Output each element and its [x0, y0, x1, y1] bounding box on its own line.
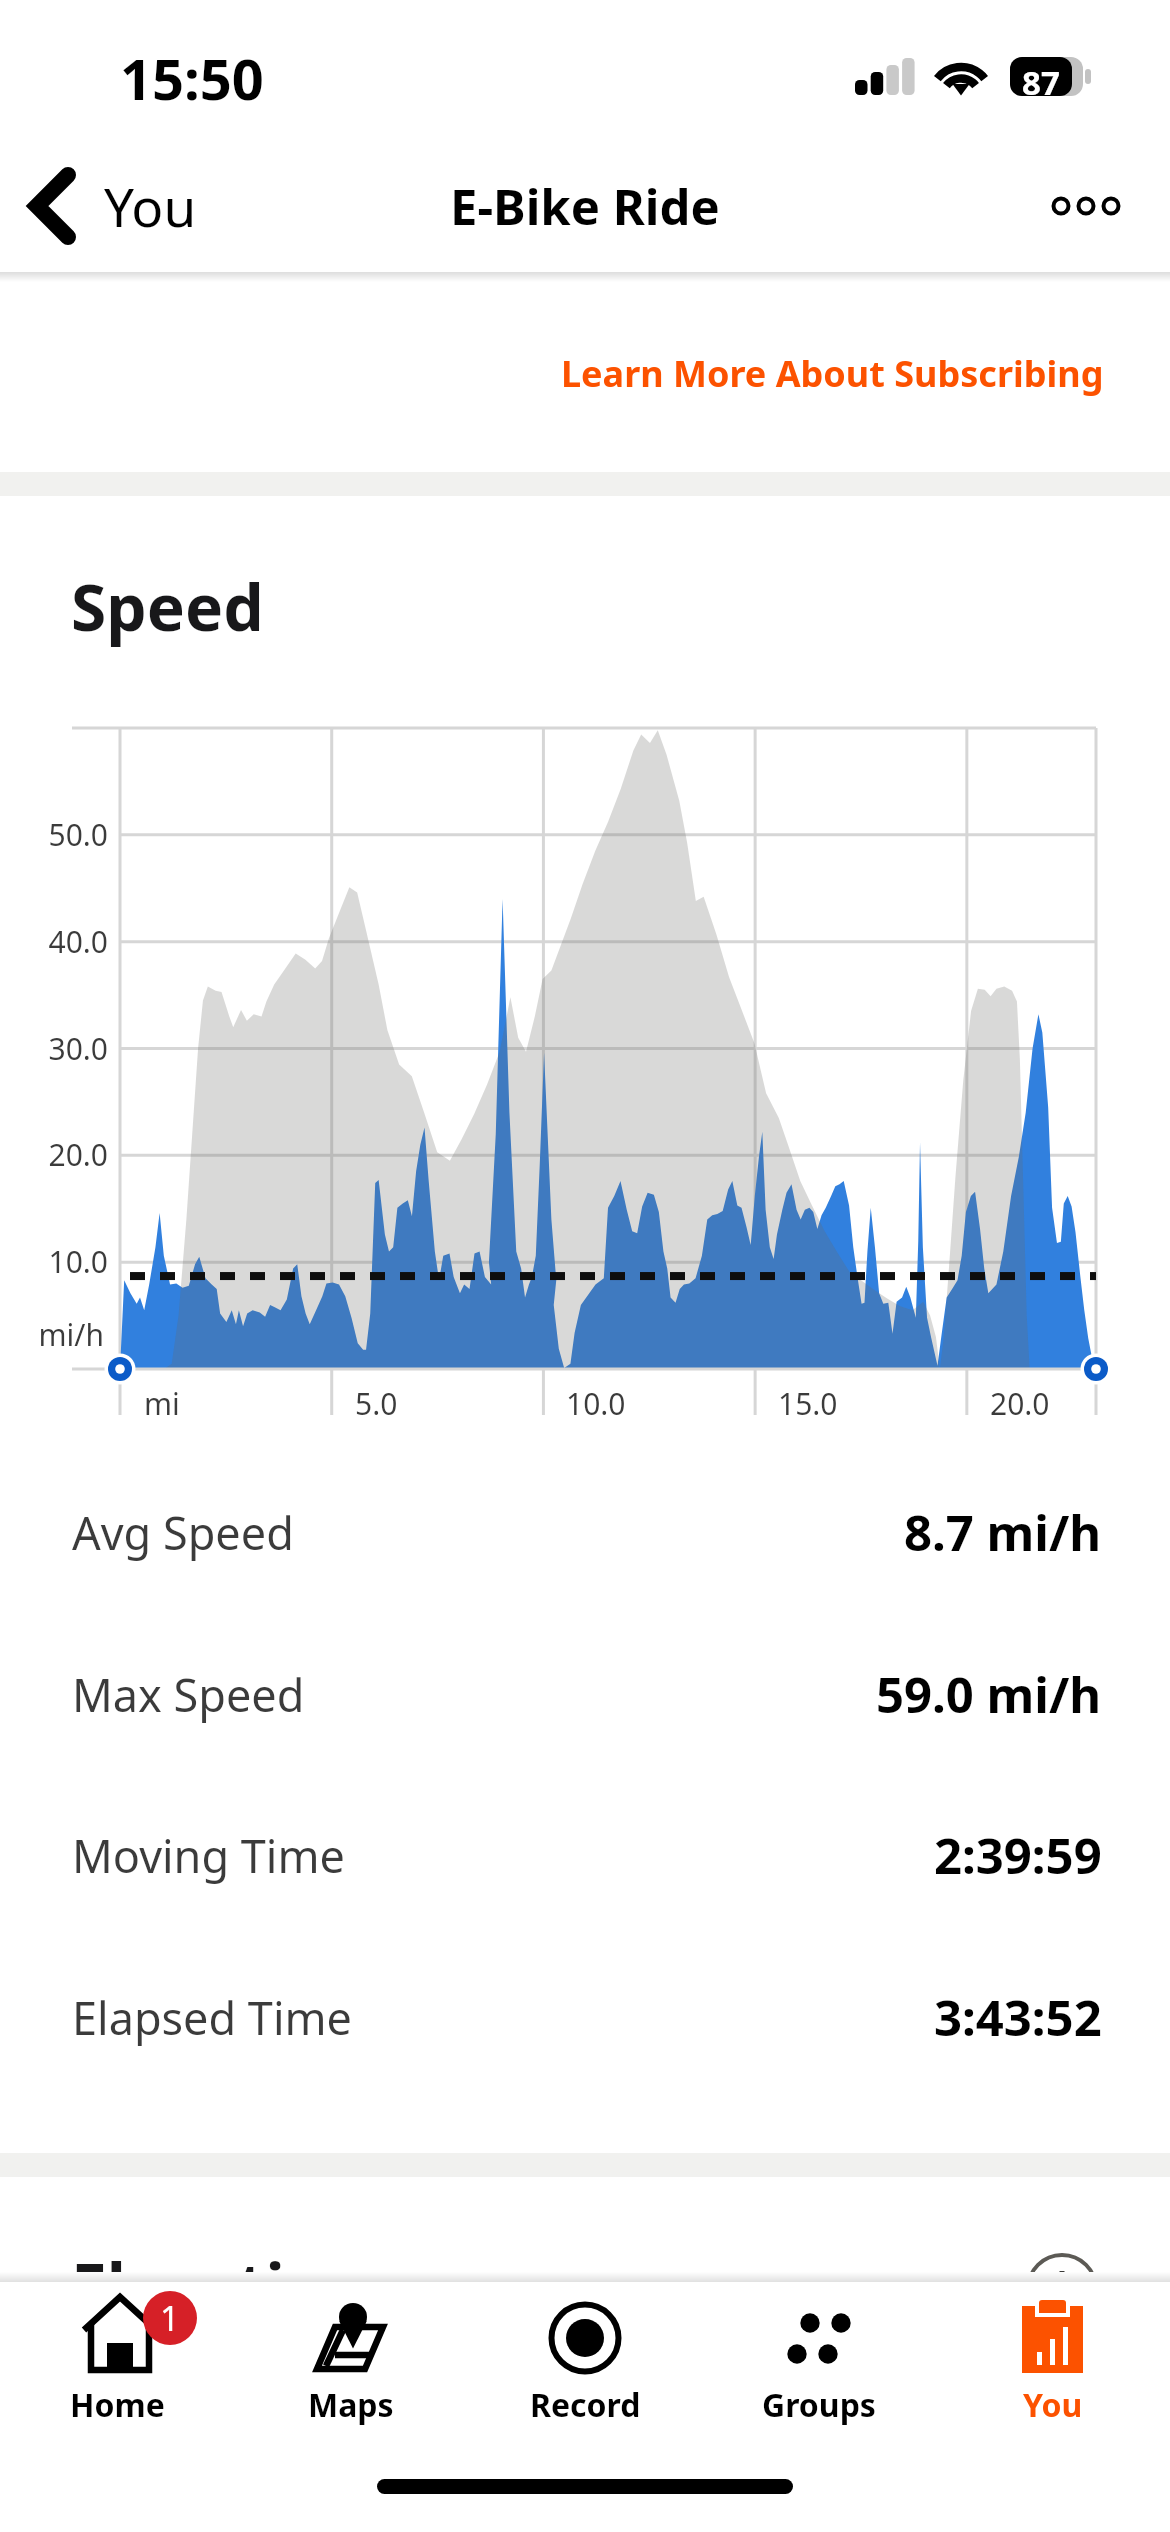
staticText: 10.0 [0, 1241, 108, 1282]
button[interactable]: More options [1032, 152, 1140, 260]
staticText: You [104, 170, 197, 242]
button[interactable]: Elapsed Time [0, 1937, 1170, 2097]
staticText: 20.0 [0, 1134, 108, 1175]
button[interactable]: Groups [702, 2282, 936, 2460]
staticText: 59.0 mi/h [876, 1661, 1102, 1728]
button[interactable]: Moving Time [0, 1775, 1170, 1935]
staticText: Home [70, 2383, 165, 2427]
staticText: Groups [762, 2383, 876, 2427]
staticText: 10.0 [566, 1383, 626, 1424]
staticText: 8.7 mi/h [904, 1499, 1102, 1566]
staticText: You [1023, 2383, 1083, 2427]
button[interactable]: Avg Speed [0, 1452, 1170, 1612]
staticText: 1 [160, 2295, 180, 2341]
button[interactable]: Record [468, 2282, 702, 2460]
button[interactable]: You [936, 2282, 1170, 2460]
staticText: mi/h [0, 1314, 104, 1355]
staticText: Elapsed Time [72, 1987, 352, 2048]
staticText: Elevation [71, 2242, 367, 2329]
staticText: 30.0 [0, 1028, 108, 1069]
staticText: 15.0 [778, 1383, 838, 1424]
staticText: Speed [71, 563, 264, 650]
staticText: Learn More About Subscribing [561, 349, 1104, 398]
button[interactable]: Maps [234, 2282, 468, 2460]
staticText: 20.0 [990, 1383, 1050, 1424]
staticText: Record [530, 2383, 641, 2427]
staticText: Moving Time [72, 1825, 345, 1886]
staticText: Max Speed [72, 1664, 305, 1725]
staticText: 87 [1013, 60, 1069, 105]
button[interactable]: You [24, 161, 197, 251]
staticText: Maps [308, 2383, 394, 2427]
button[interactable]: 1 [0, 2282, 234, 2460]
button[interactable]: Max Speed [0, 1614, 1170, 1774]
staticText: 2:39:59 [934, 1822, 1102, 1889]
staticText: 3:43:52 [934, 1984, 1102, 2051]
button[interactable]: Learn More About Subscribing [0, 274, 1170, 472]
staticText: 5.0 [355, 1383, 398, 1424]
button[interactable]: Chart info [1027, 2254, 1097, 2324]
staticText: 50.0 [0, 814, 108, 855]
staticText: Avg Speed [72, 1502, 294, 1563]
staticText: 40.0 [0, 921, 108, 962]
staticText: E-Bike Ride [450, 173, 720, 240]
staticText: mi [144, 1383, 180, 1424]
staticText: 15:50 [120, 40, 264, 116]
